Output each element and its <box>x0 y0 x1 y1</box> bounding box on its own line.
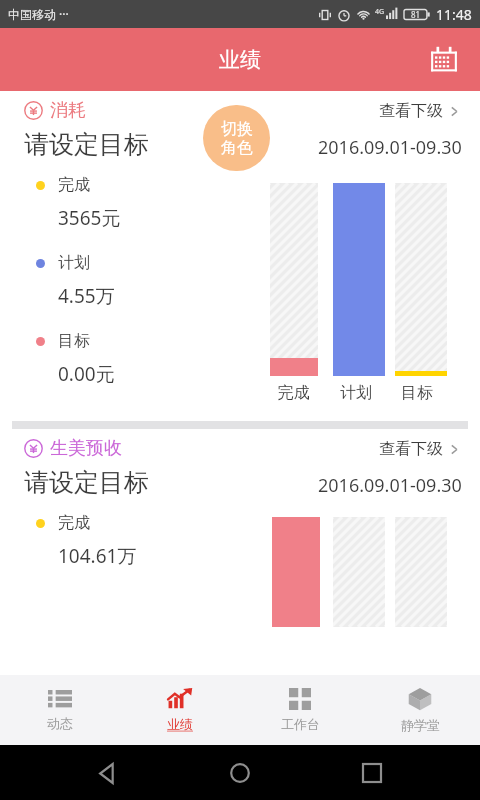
staticText: 生美预收 <box>50 437 122 460</box>
staticText: 请设定目标 <box>24 129 149 160</box>
staticText: 2016.09.01-09.30 <box>318 135 462 160</box>
button[interactable]: 业绩 <box>120 675 240 745</box>
button[interactable]: 静学堂 <box>360 675 480 745</box>
staticText: 81 <box>411 9 421 20</box>
staticText: 3565元 <box>58 205 121 231</box>
staticText: 中国移动 ··· <box>8 6 69 22</box>
button[interactable]: Home <box>216 749 264 797</box>
button[interactable]: Back <box>84 749 132 797</box>
staticText: 2016.09.01-09.30 <box>318 473 462 498</box>
staticText: 查看下级 <box>379 101 443 121</box>
staticText: 静学堂 <box>401 717 440 733</box>
staticText: 完成 <box>58 175 90 195</box>
staticText: 计划 <box>58 253 90 273</box>
staticText: 目标 <box>58 331 90 351</box>
staticText: 业绩 <box>219 47 261 73</box>
staticText: 查看下级 <box>379 439 443 459</box>
staticText: 业绩 <box>167 716 193 732</box>
staticText: 消耗 <box>50 99 86 122</box>
button[interactable]: 切换 角色 <box>203 105 270 171</box>
staticText: 工作台 <box>281 716 320 732</box>
staticText: 4G <box>375 7 385 17</box>
button[interactable]: 查看下级 <box>379 101 462 121</box>
button[interactable]: 工作台 <box>240 675 360 745</box>
button[interactable]: Calendar <box>422 38 466 82</box>
staticText: 动态 <box>47 715 73 731</box>
staticText: 完成 <box>262 383 325 403</box>
staticText: 104.61万 <box>58 543 137 569</box>
staticText: 0.00元 <box>58 361 115 387</box>
staticText: 目标 <box>387 383 447 403</box>
staticText: 切换 角色 <box>221 119 253 158</box>
staticText: 完成 <box>58 513 90 533</box>
staticText: 请设定目标 <box>24 467 149 498</box>
button[interactable]: 查看下级 <box>379 439 462 459</box>
staticText: 计划 <box>325 383 387 403</box>
button[interactable]: Recents <box>348 749 396 797</box>
staticText: 4.55万 <box>58 283 115 309</box>
staticText: 11:48 <box>436 5 472 24</box>
button[interactable]: 动态 <box>0 675 120 745</box>
